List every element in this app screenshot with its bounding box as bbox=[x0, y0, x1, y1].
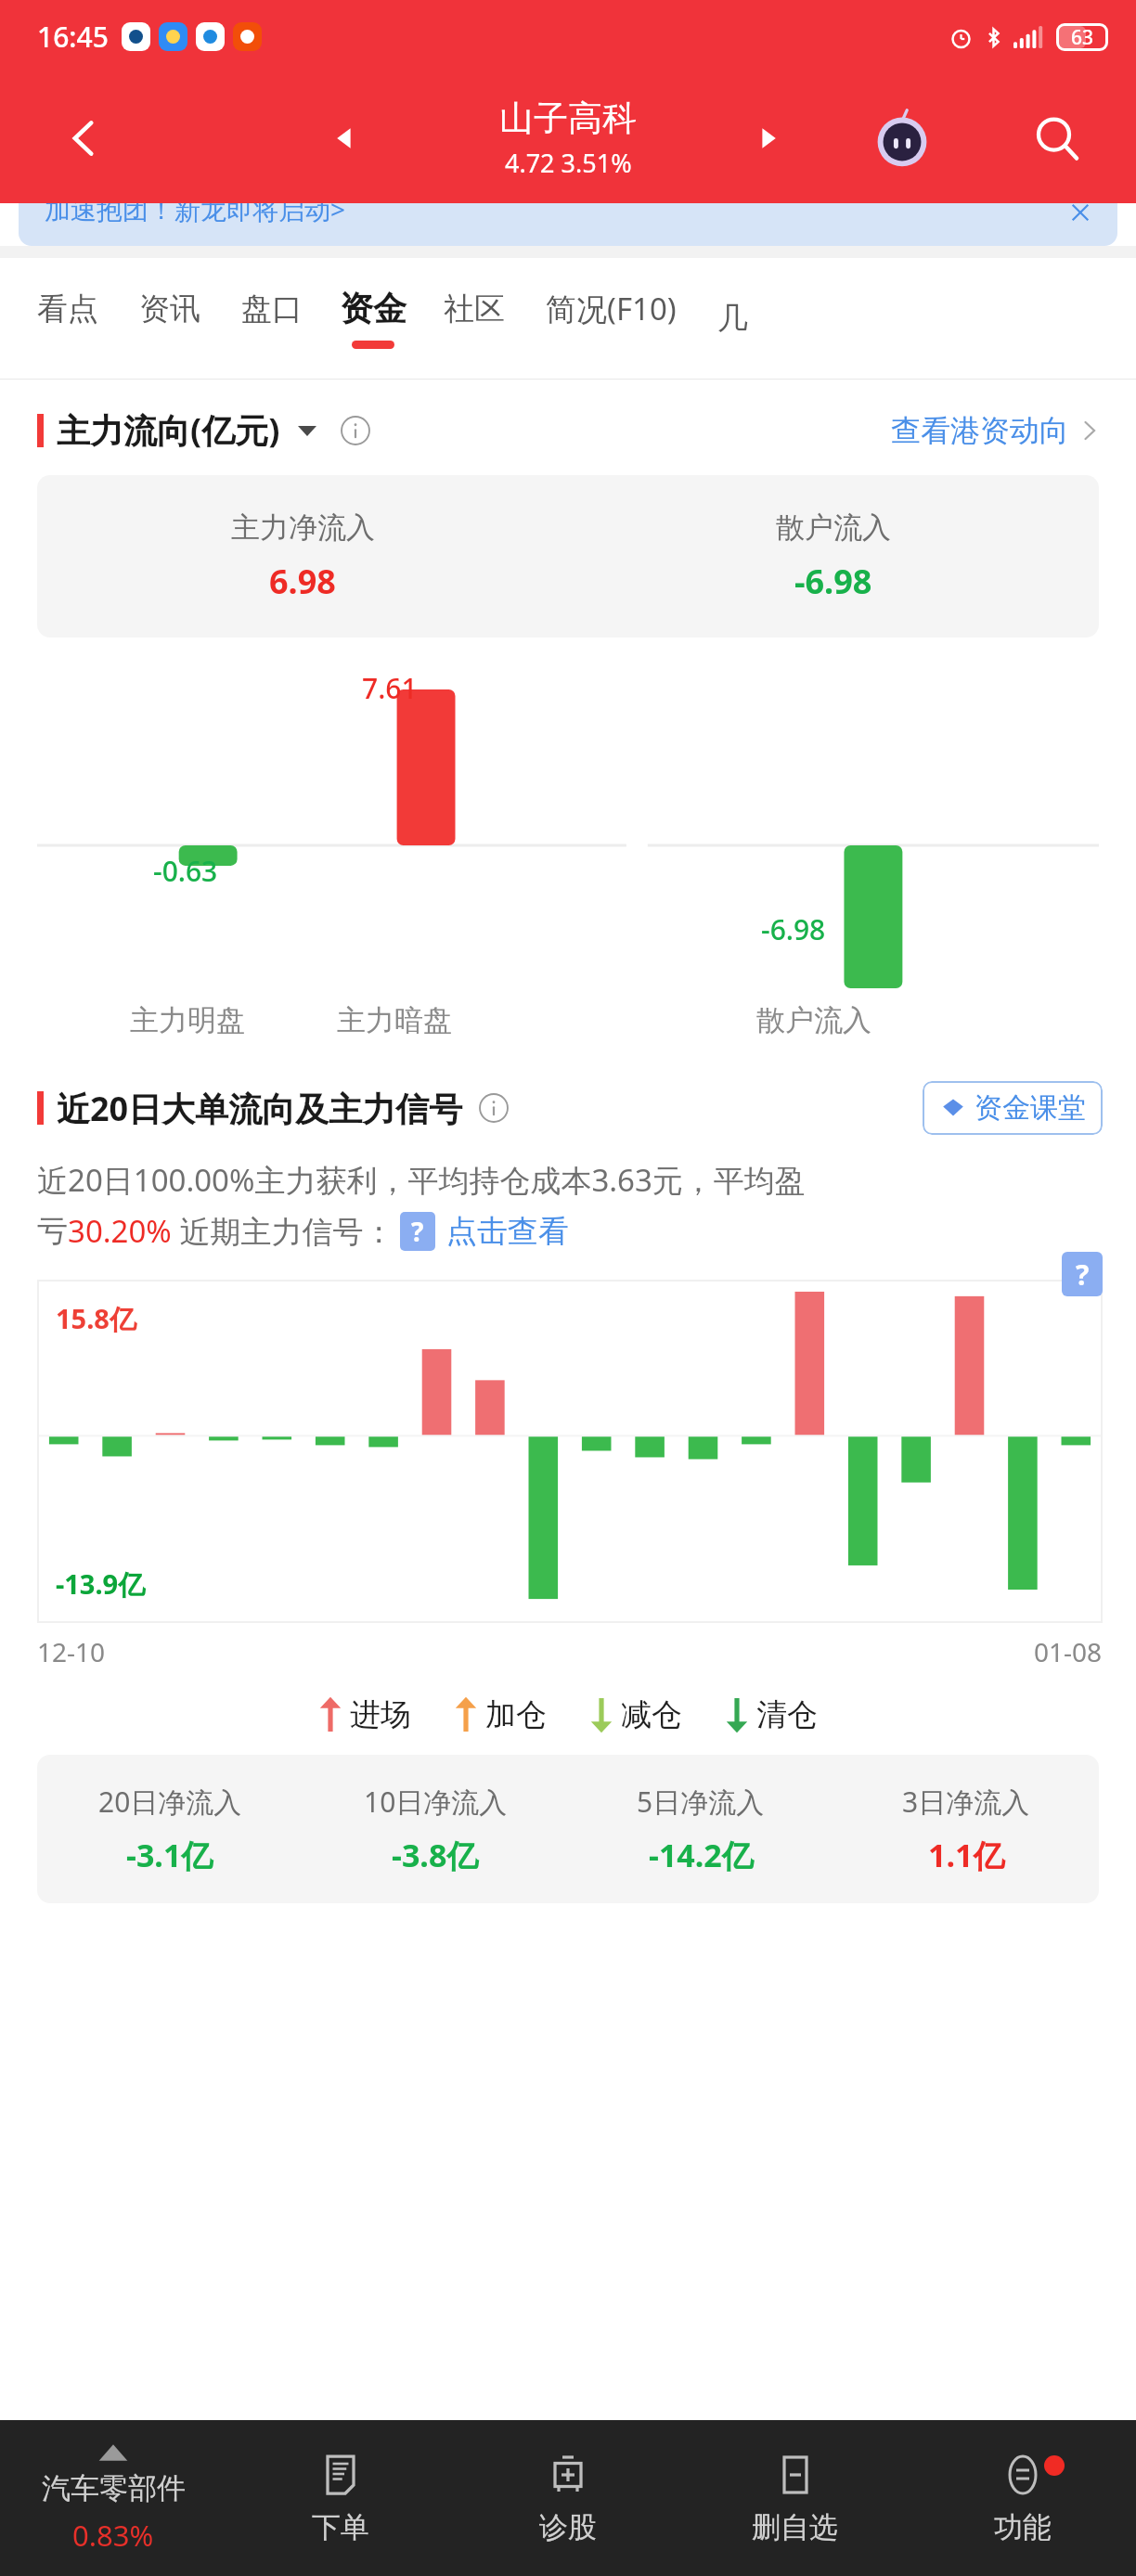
staticText: -13.9亿 bbox=[56, 1565, 146, 1603]
staticText: -6.98 bbox=[794, 559, 872, 604]
staticText: 5日净流入 bbox=[637, 1783, 765, 1821]
staticText: 近20日大单流向及主力信号 bbox=[57, 1086, 463, 1131]
staticText: 进场 bbox=[350, 1695, 411, 1734]
button[interactable]: Info bbox=[340, 415, 371, 446]
staticText: 社区 bbox=[444, 290, 505, 328]
staticText: 主力暗盘 bbox=[337, 1002, 452, 1038]
button[interactable]: 简况(F10) bbox=[546, 258, 677, 379]
staticText: 0.83% bbox=[72, 2516, 154, 2555]
staticText: 7.61 bbox=[362, 669, 418, 707]
button[interactable]: 加仓 bbox=[454, 1695, 547, 1734]
button[interactable]: Select metric bbox=[291, 415, 323, 446]
staticText: 01-08 bbox=[1034, 1634, 1103, 1669]
staticText: -6.98 bbox=[761, 910, 826, 948]
button[interactable]: 社区 bbox=[444, 258, 505, 379]
button[interactable]: 汽车零部件 bbox=[0, 2420, 226, 2576]
button[interactable]: 查看港资动向 bbox=[891, 412, 1103, 449]
staticText: 减仓 bbox=[621, 1695, 682, 1734]
staticText: -3.8亿 bbox=[392, 1834, 479, 1876]
staticText: 删自选 bbox=[752, 2509, 838, 2545]
button[interactable]: 资金课堂 bbox=[923, 1081, 1103, 1135]
staticText: 16:45 bbox=[37, 18, 109, 56]
staticText: 主力明盘 bbox=[130, 1002, 245, 1038]
button[interactable]: 加速抱团！新龙即将启动> bbox=[19, 203, 1117, 246]
staticText: -14.2亿 bbox=[649, 1834, 754, 1876]
button[interactable]: 点击查看 bbox=[446, 1212, 569, 1251]
button[interactable]: 清仓 bbox=[725, 1695, 818, 1734]
button[interactable]: 删自选 bbox=[681, 2420, 909, 2576]
staticText: 30.20% bbox=[68, 1210, 172, 1252]
staticText: 点击查看 bbox=[446, 1212, 569, 1251]
staticText: 看点 bbox=[37, 290, 98, 328]
button[interactable]: Back bbox=[56, 110, 111, 166]
button[interactable]: Previous stock bbox=[320, 114, 368, 162]
button[interactable]: 减仓 bbox=[589, 1695, 682, 1734]
staticText: 盘口 bbox=[241, 290, 303, 328]
button[interactable]: Chart help bbox=[1062, 1252, 1103, 1296]
staticText: 亏 bbox=[37, 1212, 68, 1251]
staticText: 散户流入 bbox=[756, 1002, 871, 1038]
staticText: 资讯 bbox=[139, 290, 200, 328]
staticText: 近期主力信号： bbox=[172, 1210, 394, 1252]
staticText: -3.1亿 bbox=[126, 1834, 213, 1876]
button[interactable]: 盘口 bbox=[241, 258, 303, 379]
staticText: 山子高科 bbox=[499, 97, 637, 140]
staticText: 简况(F10) bbox=[546, 288, 677, 329]
button[interactable]: 主力净流入 bbox=[37, 475, 1099, 638]
button[interactable]: 资讯 bbox=[139, 258, 200, 379]
staticText: 功能 bbox=[994, 2509, 1052, 2545]
staticText: 加仓 bbox=[485, 1695, 547, 1734]
button[interactable]: Next stock bbox=[744, 114, 793, 162]
button[interactable]: 诊股 bbox=[454, 2420, 681, 2576]
staticText: 4.72 3.51% bbox=[505, 146, 632, 180]
staticText: 散户流入 bbox=[776, 509, 891, 546]
button[interactable]: Info bbox=[478, 1092, 510, 1124]
button[interactable]: 15.8亿 bbox=[37, 1280, 1103, 1623]
button[interactable]: 下单 bbox=[226, 2420, 454, 2576]
staticText: 近20日100.00%主力获利，平均持仓成本3.63元，平均盈 bbox=[37, 1159, 806, 1201]
button[interactable]: Search bbox=[1026, 108, 1088, 169]
button[interactable]: 20日净流入 bbox=[37, 1755, 1099, 1903]
staticText: 1.1亿 bbox=[928, 1834, 1005, 1876]
staticText: 汽车零部件 bbox=[42, 2470, 186, 2506]
staticText: 诊股 bbox=[539, 2509, 597, 2545]
staticText: 资金 bbox=[340, 288, 407, 329]
staticText: 加速抱团！新龙即将启动> bbox=[45, 203, 346, 226]
staticText: 查看港资动向 bbox=[891, 412, 1069, 449]
staticText: 12-10 bbox=[37, 1634, 106, 1669]
staticText: -0.63 bbox=[153, 852, 218, 890]
button[interactable]: 资金 bbox=[340, 258, 407, 379]
staticText: 15.8亿 bbox=[56, 1300, 136, 1337]
staticText: 主力流向(亿元) bbox=[57, 407, 280, 453]
staticText: 3日净流入 bbox=[902, 1783, 1030, 1821]
staticText: 10日净流入 bbox=[364, 1783, 508, 1821]
button[interactable]: Close banner bbox=[1062, 203, 1099, 231]
staticText: 清仓 bbox=[756, 1695, 818, 1734]
button[interactable]: 功能 bbox=[909, 2420, 1136, 2576]
button[interactable]: 进场 bbox=[318, 1695, 411, 1734]
staticText: ? bbox=[411, 1214, 424, 1249]
staticText: 资金课堂 bbox=[975, 1090, 1086, 1126]
staticText: ? bbox=[1076, 1256, 1090, 1294]
staticText: 主力净流入 bbox=[231, 509, 375, 546]
staticText: 6.98 bbox=[269, 559, 336, 604]
staticText: 下单 bbox=[312, 2509, 369, 2545]
staticText: 20日净流入 bbox=[98, 1783, 242, 1821]
button[interactable]: Help bbox=[400, 1212, 435, 1251]
staticText: 63 bbox=[1071, 24, 1094, 51]
button[interactable]: AI assistant bbox=[868, 104, 936, 173]
staticText: 几 bbox=[717, 299, 748, 338]
button[interactable]: 看点 bbox=[37, 258, 98, 379]
